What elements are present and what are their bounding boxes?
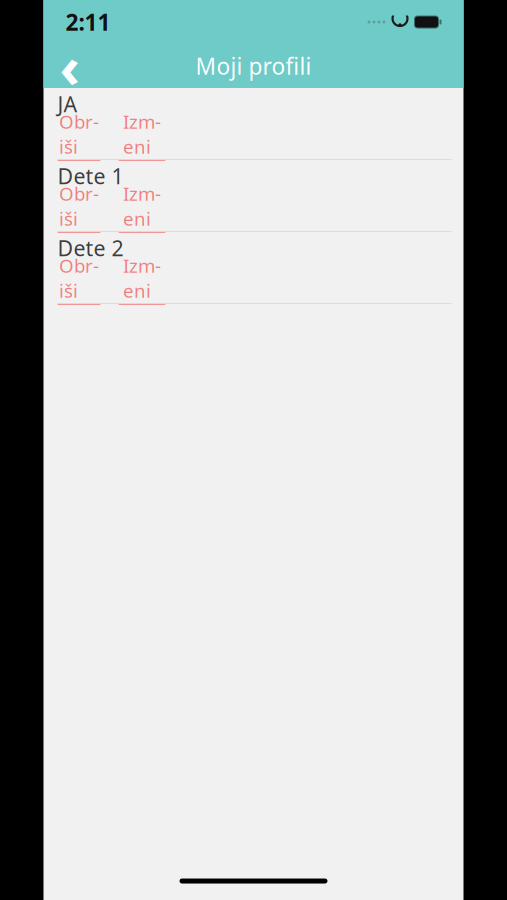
staticText: Izmeni — [123, 109, 161, 159]
button[interactable]: Izmeni — [118, 109, 165, 161]
staticText: JA — [57, 90, 77, 118]
staticText: Izmeni — [123, 253, 161, 303]
staticText: Obriši — [59, 181, 99, 231]
button[interactable]: Obriši — [57, 181, 100, 233]
button[interactable]: Obriši — [57, 109, 100, 161]
staticText: Moji profili — [195, 51, 311, 81]
staticText: 2:11 — [65, 7, 110, 37]
button[interactable]: Izmeni — [118, 181, 165, 233]
staticText: Dete 2 — [57, 234, 123, 262]
button[interactable]: Back — [43, 44, 95, 88]
staticText: ‹ — [59, 29, 79, 103]
staticText: Dete 1 — [57, 162, 123, 190]
staticText: Obriši — [59, 253, 99, 303]
staticText: Izmeni — [123, 181, 161, 231]
staticText: Obriši — [59, 109, 99, 159]
button[interactable]: Izmeni — [118, 253, 165, 305]
button[interactable]: Obriši — [57, 253, 100, 305]
